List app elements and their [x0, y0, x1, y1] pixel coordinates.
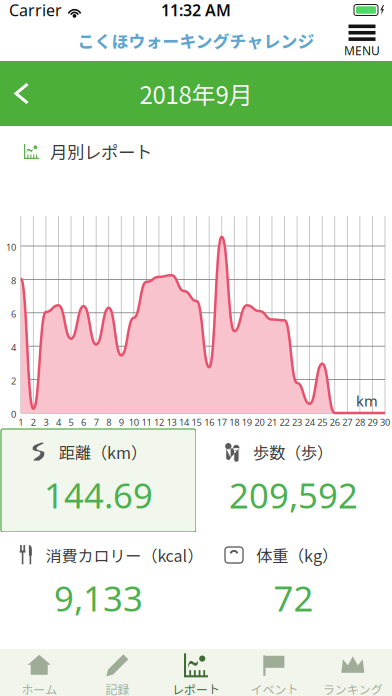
staticText: 23 [292, 416, 302, 428]
staticText: Carrier [9, 0, 62, 21]
staticText: 18 [229, 416, 239, 428]
staticText: 25 [317, 416, 327, 428]
staticText: 22 [279, 416, 289, 428]
staticText: 28 [355, 416, 365, 428]
staticText: 10 [6, 241, 16, 253]
staticText: レポート [172, 680, 220, 696]
staticText: 9,133 [54, 575, 143, 621]
staticText: 1 [18, 416, 23, 428]
staticText: 月別レポート [50, 139, 152, 164]
staticText: 8 [11, 274, 16, 287]
staticText: 2 [31, 416, 36, 428]
button[interactable]: 記録 [78, 649, 157, 696]
staticText: 11 [141, 416, 151, 428]
button[interactable]: 歩数（歩） [196, 429, 391, 532]
button[interactable]: Menu [336, 21, 392, 59]
staticText: km [356, 391, 378, 410]
button[interactable]: 消費カロリー（kcal） [1, 532, 196, 635]
staticText: 8 [106, 416, 111, 428]
staticText: 3 [43, 416, 48, 428]
button[interactable]: 距離（km） [1, 429, 196, 532]
staticText: 4 [11, 341, 16, 354]
staticText: ホーム [21, 680, 57, 696]
staticText: 2 [11, 375, 16, 387]
staticText: 歩数（歩） [253, 440, 333, 464]
staticText: 消費カロリー（kcal） [45, 543, 203, 567]
staticText: 距離（km） [59, 440, 147, 464]
staticText: 26 [330, 416, 340, 428]
staticText: イベント [250, 680, 298, 696]
staticText: 13 [166, 416, 176, 428]
staticText: 6 [11, 308, 16, 320]
button[interactable]: イベント [235, 649, 314, 696]
staticText: MENU [344, 42, 380, 58]
staticText: 14 [179, 416, 189, 428]
button[interactable]: ランキング [314, 649, 392, 696]
staticText: 5 [68, 416, 73, 428]
button[interactable]: Previous month [0, 62, 46, 124]
staticText: 29 [367, 416, 377, 428]
staticText: 16 [204, 416, 214, 428]
staticText: 24 [305, 416, 315, 428]
staticText: 17 [217, 416, 227, 428]
staticText: 10 [129, 416, 139, 428]
staticText: 15 [192, 416, 202, 428]
staticText: 11:32 AM [161, 0, 231, 21]
staticText: 記録 [106, 680, 130, 696]
staticText: こくほウォーキングチャレンジ [77, 28, 314, 53]
button[interactable]: レポート [157, 649, 235, 696]
button[interactable]: ホーム [0, 649, 78, 696]
staticText: 19 [242, 416, 252, 428]
staticText: 0 [11, 408, 16, 420]
staticText: 7 [94, 416, 99, 428]
button[interactable]: 体重（kg） [196, 532, 391, 635]
staticText: 体重（kg） [256, 543, 338, 567]
staticText: 30 [380, 416, 390, 428]
staticText: ランキング [323, 680, 383, 696]
staticText: 21 [267, 416, 277, 428]
staticText: 6 [81, 416, 86, 428]
staticText: 20 [254, 416, 264, 428]
staticText: 12 [154, 416, 164, 428]
staticText: 9 [119, 416, 124, 428]
staticText: 27 [342, 416, 352, 428]
staticText: 144.69 [44, 472, 153, 518]
staticText: 2018年9月 [139, 76, 252, 111]
staticText: 209,592 [229, 472, 358, 518]
staticText: 4 [56, 416, 61, 428]
staticText: 72 [273, 575, 313, 621]
